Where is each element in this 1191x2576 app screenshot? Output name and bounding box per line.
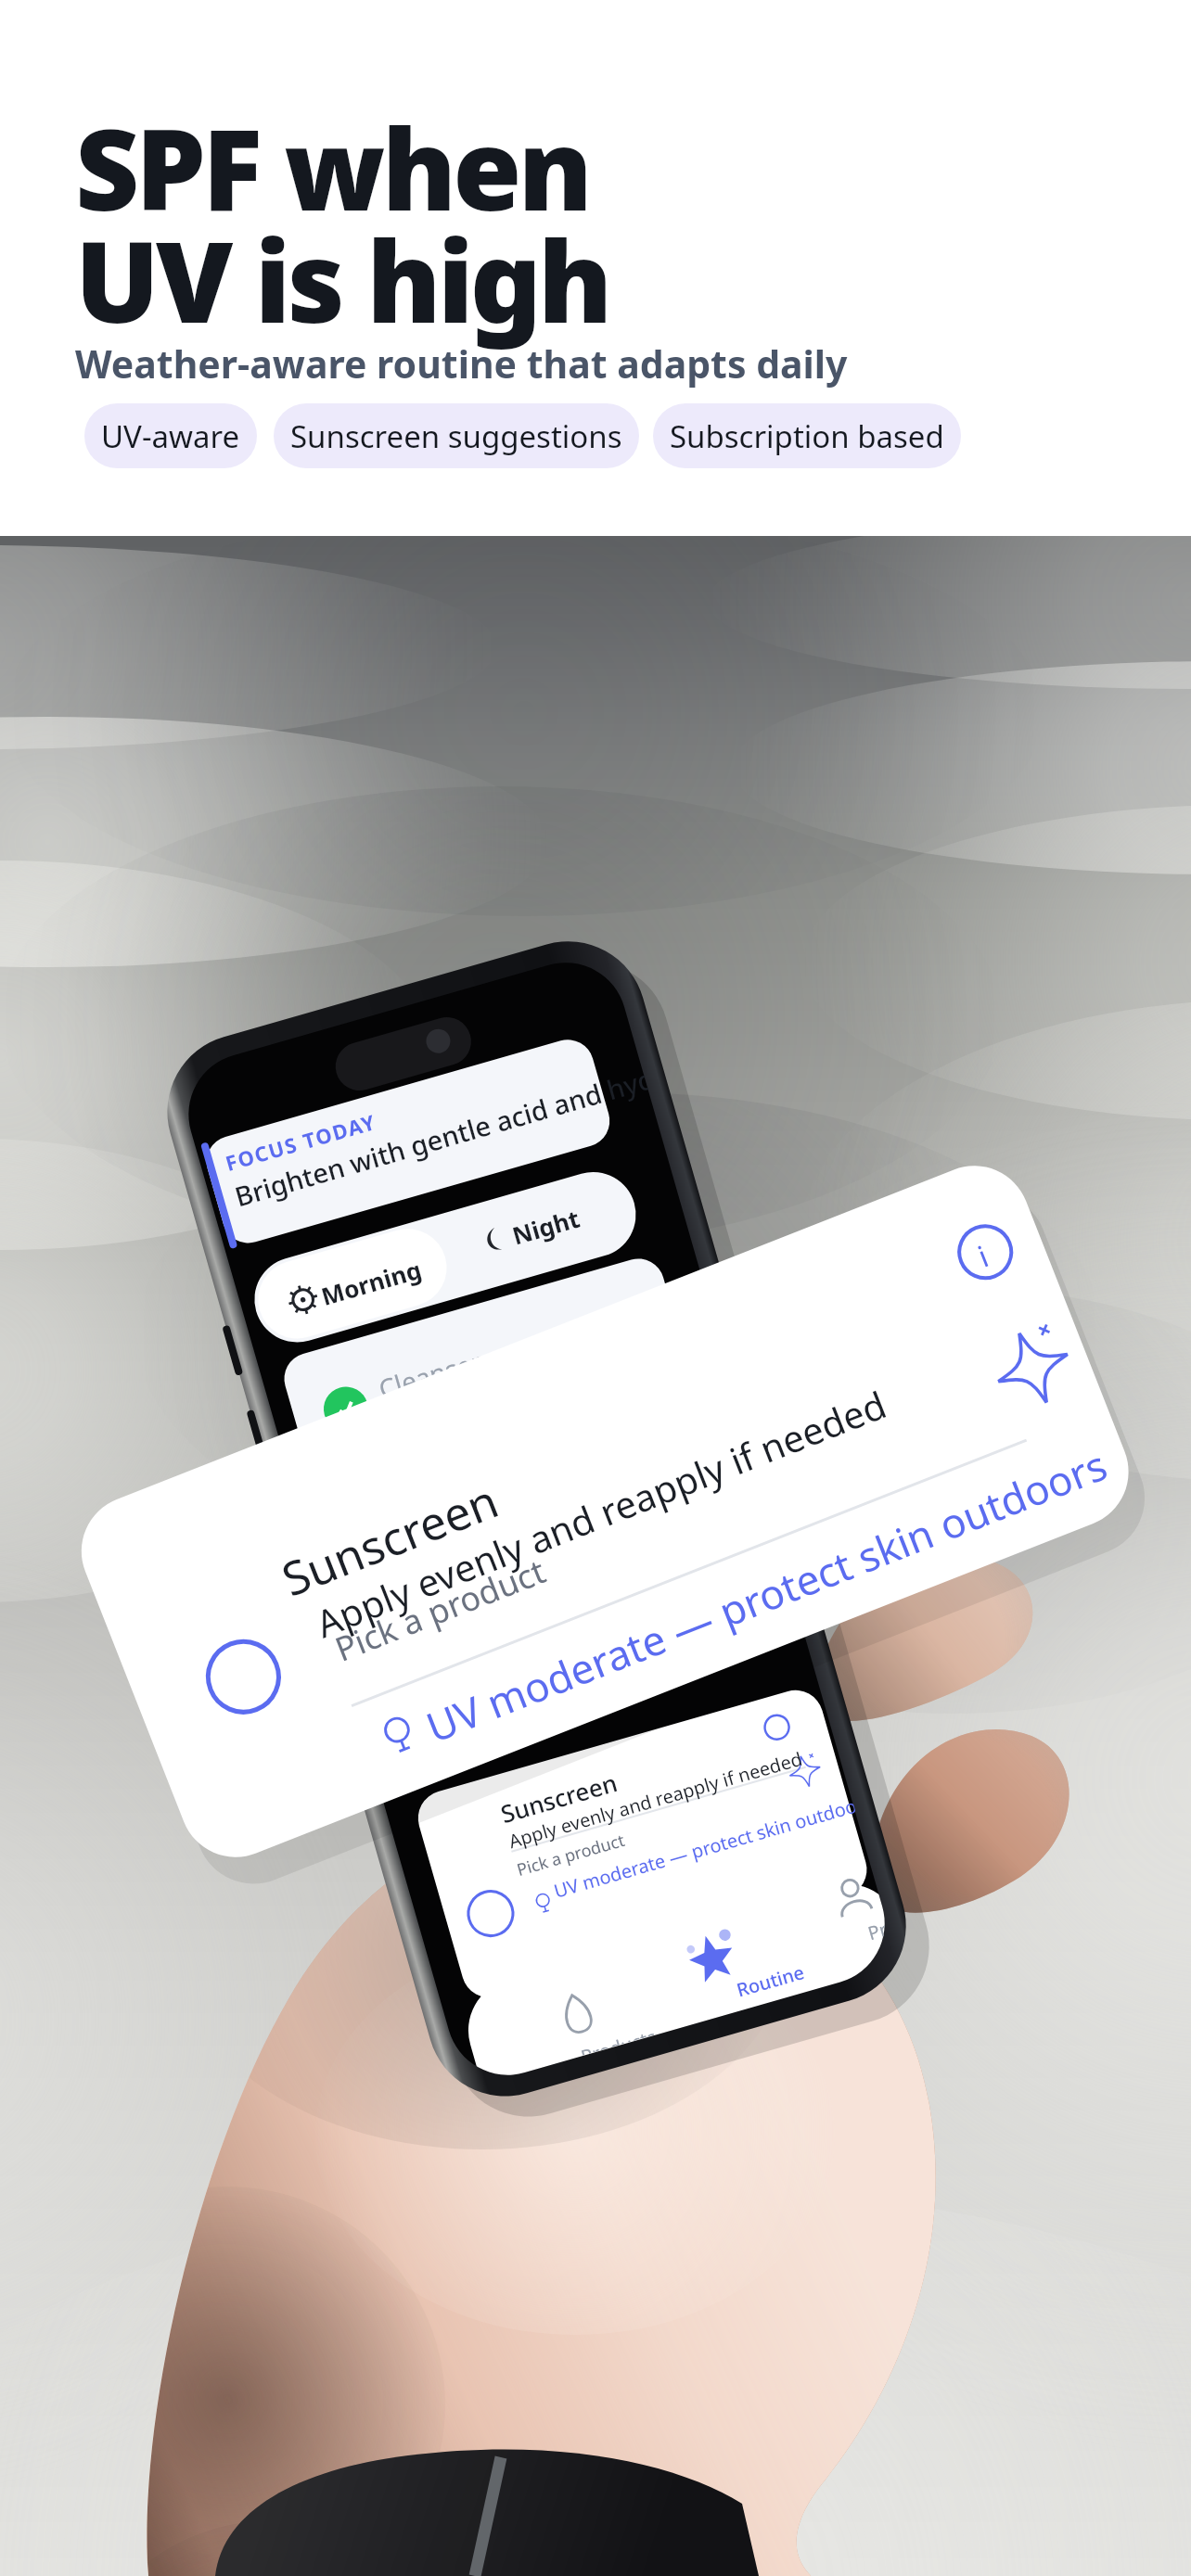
staticText: Apply evenly and reapply if needed [308,1378,893,1648]
button[interactable] [412,1683,874,2004]
button[interactable] [199,1032,624,1256]
staticText: UV moderate — protect skin outdoors [418,1436,1115,1754]
button[interactable]: Subscription based [653,403,961,468]
button[interactable] [792,1857,899,1987]
button[interactable]: Sunscreen [65,1149,1145,1874]
staticText: Profile [865,1916,892,1946]
button[interactable] [245,1216,455,1352]
staticText: Sunscreen [497,1766,621,1830]
staticText: Sunscreen suggestions [290,415,622,457]
staticText: UV moderate — protect skin outdoors [551,1794,857,1904]
staticText: Weather-aware routine that adapts daily [75,338,848,389]
button[interactable] [534,1951,689,2063]
staticText: Cleanser [375,1343,487,1406]
staticText: i [972,1235,995,1276]
button[interactable]: UV-aware [84,403,257,468]
button[interactable] [437,1161,648,1297]
button[interactable]: Sunscreen suggestions [274,403,639,468]
staticText: Products [578,2024,656,2056]
staticText: Subscription based [670,415,944,457]
staticText: Morning [317,1252,425,1312]
staticText: SPF when UV is high [75,92,609,355]
staticText: Routine [734,1959,807,2003]
staticText: Sunscreen [273,1468,507,1610]
staticText: Apply evenly and reapply if needed [506,1746,805,1854]
staticText: UV-aware [101,415,240,457]
staticText: Brighten with gentle acid and hydrate [230,1062,651,1214]
button[interactable] [663,1897,823,2025]
staticText: Night [508,1201,583,1251]
staticText: Pick a product [328,1548,552,1672]
button[interactable]: Smart suggestion [975,1310,1091,1426]
staticText: FOCUS TODAY [222,1107,379,1177]
button[interactable]: Mark step complete [186,1619,301,1734]
staticText: Pick a product [514,1828,628,1881]
button[interactable] [278,1252,692,1483]
button[interactable]: More information [928,1194,1043,1310]
